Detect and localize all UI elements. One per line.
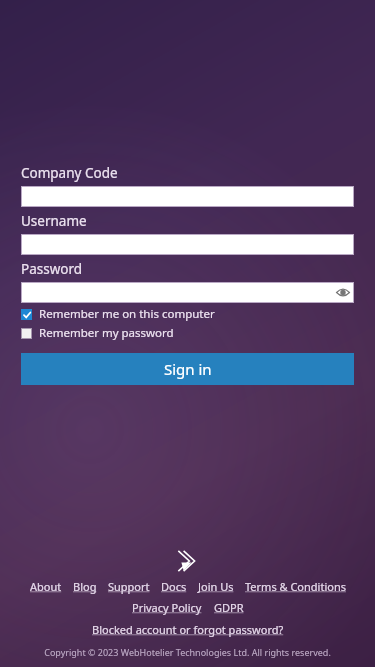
- staticText: Join Us: [198, 579, 234, 594]
- button[interactable]: Show password: [333, 283, 353, 302]
- button[interactable]: Privacy Policy: [132, 600, 202, 615]
- button[interactable]: Remember my password: [21, 325, 354, 341]
- button[interactable]: Join Us: [198, 579, 234, 594]
- staticText: Docs: [161, 579, 187, 594]
- staticText: Blocked account or forgot password?: [92, 622, 284, 637]
- staticText: Company Code: [21, 164, 118, 182]
- staticText: Password: [21, 260, 83, 278]
- staticText: Username: [21, 212, 87, 230]
- button[interactable]: WebHotelier logo: [174, 547, 202, 575]
- button[interactable]: Docs: [161, 579, 187, 594]
- staticText: Privacy Policy: [132, 600, 202, 615]
- staticText: Sign in: [164, 359, 212, 379]
- button[interactable]: Remember me on this computer: [21, 306, 354, 322]
- staticText: Support: [108, 579, 150, 594]
- button[interactable]: Sign in: [21, 353, 354, 385]
- staticText: About: [30, 579, 62, 594]
- staticText: Terms & Conditions: [245, 579, 346, 594]
- staticText: GDPR: [214, 600, 244, 615]
- button[interactable]: GDPR: [214, 600, 244, 615]
- staticText: Blog: [73, 579, 97, 594]
- button[interactable]: Blog: [73, 579, 97, 594]
- button[interactable]: Show password: [22, 283, 353, 302]
- button[interactable]: Terms & Conditions: [245, 579, 346, 594]
- staticText: Remember me on this computer: [39, 306, 215, 322]
- button[interactable]: About: [30, 579, 62, 594]
- button[interactable]: Blocked account or forgot password?: [92, 622, 284, 637]
- button[interactable]: Support: [108, 579, 150, 594]
- staticText: Copyright © 2023 WebHotelier Technologie…: [44, 646, 331, 658]
- staticText: Remember my password: [39, 325, 174, 341]
